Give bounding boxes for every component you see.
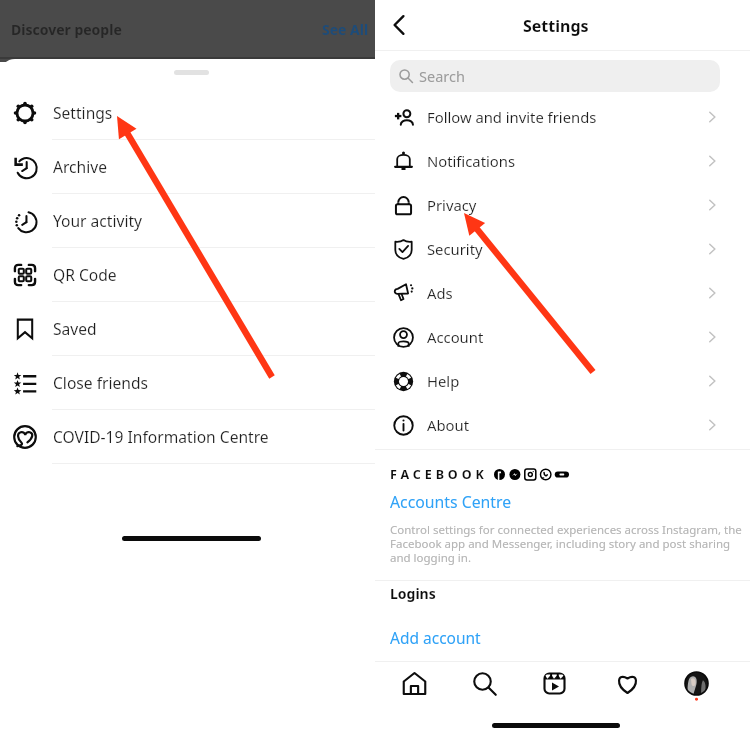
button[interactable]: Account (375, 315, 750, 359)
button[interactable]: COVID-19 Information Centre (0, 410, 375, 464)
button[interactable]: Home (394, 663, 434, 703)
button[interactable]: Profile (678, 665, 714, 701)
staticText: Archive (53, 156, 107, 177)
button[interactable]: Accounts Centre (390, 491, 512, 513)
staticText: Close friends (53, 372, 148, 393)
staticText: Settings (523, 15, 589, 37)
staticText: Accounts Centre (390, 491, 512, 513)
staticText: Security (427, 239, 483, 259)
button[interactable]: About (375, 403, 750, 447)
button[interactable]: Settings (0, 86, 375, 140)
staticText: About (427, 415, 469, 435)
staticText: Saved (53, 318, 97, 339)
button[interactable]: Help (375, 359, 750, 403)
button[interactable]: Privacy (375, 183, 750, 227)
button[interactable]: Activity (607, 663, 647, 703)
staticText: Discover people (11, 20, 122, 39)
button[interactable]: Search (464, 663, 504, 703)
staticText: Help (427, 371, 460, 391)
button[interactable]: Your activity (0, 194, 375, 248)
staticText: COVID-19 Information Centre (53, 426, 269, 447)
staticText: Account (427, 327, 484, 347)
staticText: Ads (427, 283, 453, 303)
staticText: Follow and invite friends (427, 107, 597, 127)
button[interactable]: Close friends (0, 356, 375, 410)
button[interactable]: Ads (375, 271, 750, 315)
button[interactable]: Follow and invite friends (375, 95, 750, 139)
staticText: Add account (390, 627, 481, 648)
button[interactable]: Notifications (375, 139, 750, 183)
button[interactable]: Archive (0, 140, 375, 194)
staticText: Search (419, 66, 465, 86)
button[interactable]: Add account (390, 627, 481, 648)
button[interactable]: Security (375, 227, 750, 271)
button[interactable]: Reels (534, 663, 574, 703)
staticText: FACEBOOK (390, 466, 488, 483)
button[interactable]: Back (381, 7, 417, 43)
staticText: See All (322, 20, 369, 39)
button[interactable]: Saved (0, 302, 375, 356)
staticText: Logins (390, 584, 436, 603)
button[interactable]: QR Code (0, 248, 375, 302)
staticText: Your activity (53, 210, 143, 231)
button[interactable]: See All (322, 20, 369, 39)
staticText: QR Code (53, 264, 117, 285)
staticText: Privacy (427, 195, 477, 215)
staticText: Control settings for connected experienc… (390, 522, 742, 566)
staticText: Settings (53, 102, 113, 123)
button[interactable]: Search settings (390, 60, 720, 92)
staticText: Notifications (427, 151, 516, 171)
